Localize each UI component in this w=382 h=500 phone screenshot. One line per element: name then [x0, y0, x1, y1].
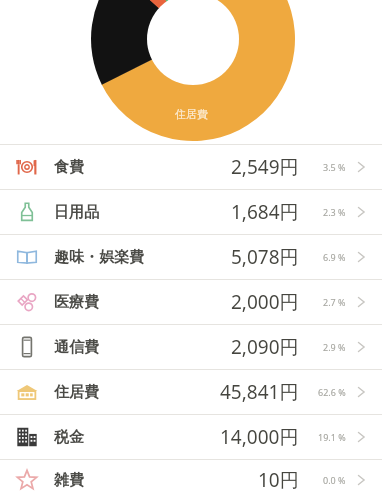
staticText: 日用品 [54, 203, 99, 222]
staticText: 医療費 [54, 293, 99, 312]
staticText: 趣味・娯楽費 [54, 248, 144, 267]
button[interactable]: 医療費 [0, 280, 382, 324]
staticText: 0.0 % [323, 474, 346, 486]
button[interactable]: 日用品 [0, 190, 382, 234]
other: Open 通信費 detail [354, 340, 368, 354]
staticText: 通信費 [54, 338, 99, 357]
staticText: 2,549円 [231, 154, 299, 180]
button[interactable]: 雑費 [0, 460, 382, 500]
button[interactable]: 住居費 [0, 370, 382, 414]
other: Open 趣味・娯楽費 detail [354, 250, 368, 264]
staticText: 3.5 % [323, 161, 346, 173]
staticText: 2.7 % [323, 296, 346, 308]
staticText: 19.1 % [318, 431, 346, 443]
staticText: 雑費 [54, 471, 84, 490]
staticText: 2,000円 [231, 289, 299, 315]
other: Open 日用品 detail [354, 205, 368, 219]
other: Open 雑費 detail [354, 473, 368, 487]
staticText: 2.3 % [323, 206, 346, 218]
button[interactable]: 通信費 [0, 325, 382, 369]
staticText: 1,684円 [231, 199, 299, 225]
staticText: 45,841円 [220, 379, 299, 405]
other: Open 住居費 detail [354, 385, 368, 399]
staticText: 2.9 % [323, 341, 346, 353]
other: Open 医療費 detail [354, 295, 368, 309]
other: Open 税金 detail [354, 430, 368, 444]
staticText: 税金 [54, 428, 84, 447]
other: Open 食費 detail [354, 160, 368, 174]
staticText: 食費 [54, 158, 84, 177]
button[interactable]: 趣味・娯楽費 [0, 235, 382, 279]
staticText: 10円 [258, 467, 299, 493]
staticText: 6.9 % [323, 251, 346, 263]
button[interactable]: 税金 [0, 415, 382, 459]
staticText: 5,078円 [231, 244, 299, 270]
staticText: 住居費 [54, 383, 99, 402]
staticText: 14,000円 [220, 424, 299, 450]
staticText: 住居費 [175, 107, 208, 121]
staticText: 2,090円 [231, 334, 299, 360]
button[interactable]: 食費 [0, 145, 382, 189]
staticText: 62.6 % [318, 386, 346, 398]
